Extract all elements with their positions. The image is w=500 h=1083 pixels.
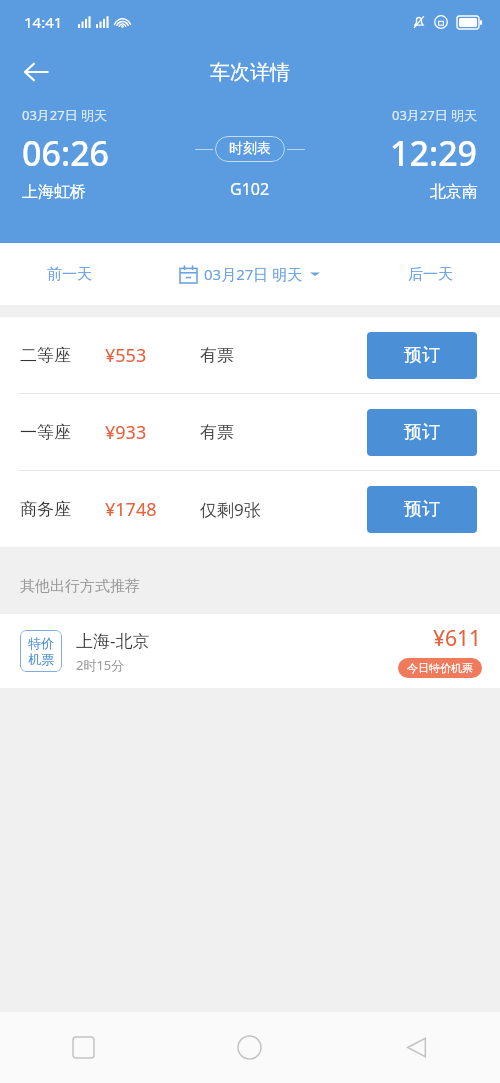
button[interactable]: Recents bbox=[0, 1012, 166, 1083]
button[interactable]: 预订 bbox=[367, 486, 477, 533]
button[interactable]: 特价 bbox=[0, 614, 500, 688]
button[interactable]: 一等座 bbox=[0, 394, 500, 470]
staticText: 上海虹桥 bbox=[22, 182, 86, 202]
staticText: 03月27日 明天 bbox=[204, 264, 303, 284]
staticText: 有票 bbox=[200, 345, 367, 366]
staticText: 有票 bbox=[200, 422, 367, 443]
staticText: 14:41 bbox=[24, 12, 63, 32]
button[interactable]: 二等座 bbox=[0, 317, 500, 393]
staticText: 机票 bbox=[28, 651, 54, 667]
staticText: 06:26 bbox=[22, 130, 110, 176]
staticText: 车次详情 bbox=[210, 60, 290, 85]
staticText: ¥1748 bbox=[105, 497, 200, 522]
staticText: 前一天 bbox=[47, 265, 92, 284]
button[interactable]: 预订 bbox=[367, 332, 477, 379]
button[interactable]: 03月27日 明天 bbox=[139, 243, 361, 305]
staticText: 北京南 bbox=[430, 182, 478, 202]
staticText: 时刻表 bbox=[229, 140, 271, 158]
staticText: 03月27日 明天 bbox=[22, 106, 108, 124]
staticText: 今日特价机票 bbox=[407, 661, 473, 675]
staticText: 2时15分 bbox=[76, 656, 125, 674]
button[interactable]: 前一天 bbox=[0, 243, 139, 305]
button[interactable]: Home bbox=[166, 1012, 333, 1083]
button[interactable]: Back bbox=[12, 48, 60, 96]
button[interactable]: Back bbox=[333, 1012, 500, 1083]
staticText: 预订 bbox=[404, 344, 440, 367]
staticText: 特价 bbox=[28, 635, 54, 651]
staticText: 仅剩9张 bbox=[200, 498, 367, 521]
staticText: G102 bbox=[230, 178, 270, 200]
staticText: 上海-北京 bbox=[76, 629, 150, 652]
staticText: 预订 bbox=[404, 498, 440, 521]
staticText: 二等座 bbox=[20, 345, 105, 366]
staticText: ¥611 bbox=[433, 624, 482, 653]
button[interactable]: 后一天 bbox=[361, 243, 500, 305]
button[interactable]: 商务座 bbox=[0, 471, 500, 547]
staticText: 预订 bbox=[404, 421, 440, 444]
staticText: 一等座 bbox=[20, 422, 105, 443]
staticText: ¥553 bbox=[105, 343, 200, 368]
staticText: 其他出行方式推荐 bbox=[20, 577, 140, 596]
staticText: 商务座 bbox=[20, 499, 105, 520]
button[interactable]: 时刻表 bbox=[215, 136, 285, 162]
staticText: ¥933 bbox=[105, 420, 200, 445]
staticText: 03月27日 明天 bbox=[392, 106, 478, 124]
staticText: 后一天 bbox=[408, 265, 453, 284]
button[interactable]: 预订 bbox=[367, 409, 477, 456]
staticText: 12:29 bbox=[390, 130, 478, 176]
